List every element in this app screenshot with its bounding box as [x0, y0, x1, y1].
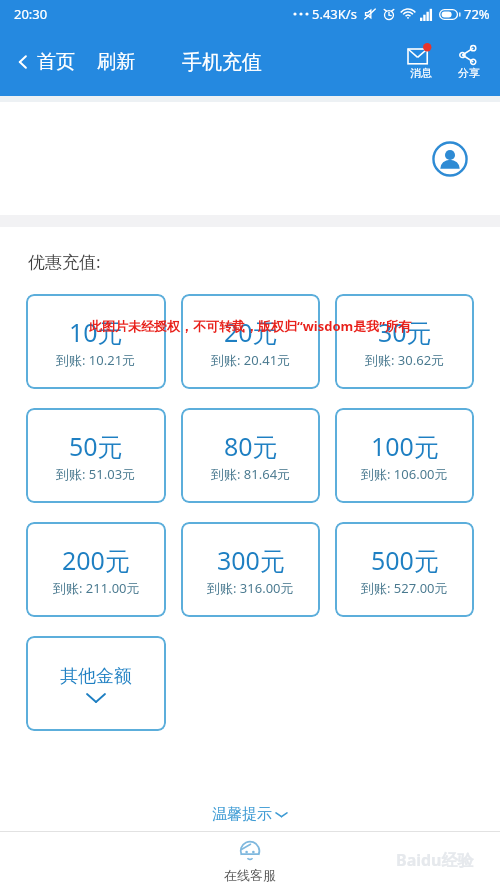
button[interactable]: 20元: [181, 294, 320, 389]
button[interactable]: 100元: [335, 408, 474, 503]
button[interactable]: 首页: [10, 44, 80, 80]
staticText: 80元: [224, 429, 278, 463]
staticText: 手机充值: [182, 50, 262, 75]
button[interactable]: 50元: [26, 408, 166, 503]
staticText: 到账: 30.62元: [365, 351, 445, 369]
button[interactable]: 消息: [400, 43, 442, 82]
staticText: 300元: [217, 543, 285, 577]
staticText: 在线客服: [224, 867, 276, 883]
staticText: 200元: [62, 543, 130, 577]
staticText: 20:30: [14, 5, 48, 23]
staticText: 到账: 10.21元: [56, 351, 136, 369]
staticText: 其他金额: [60, 665, 132, 688]
staticText: 5.43K/s: [312, 5, 357, 23]
staticText: Baidu经验: [396, 849, 474, 871]
staticText: 72%: [464, 5, 490, 23]
button[interactable]: 温馨提示: [0, 805, 500, 824]
button[interactable]: 300元: [181, 522, 320, 617]
button[interactable]: 刷新: [92, 44, 140, 80]
button[interactable]: 500元: [335, 522, 474, 617]
staticText: 分享: [458, 66, 480, 80]
button[interactable]: 80元: [181, 408, 320, 503]
button[interactable]: 10元: [26, 294, 166, 389]
staticText: 到账: 316.00元: [207, 579, 294, 597]
staticText: 到账: 20.41元: [211, 351, 291, 369]
staticText: 到账: 527.00元: [361, 579, 448, 597]
button[interactable]: Account: [432, 141, 468, 177]
staticText: 10元: [69, 315, 123, 349]
staticText: 优惠充值:: [28, 250, 101, 273]
button[interactable]: 200元: [26, 522, 166, 617]
staticText: 500元: [371, 543, 439, 577]
staticText: 消息: [410, 66, 432, 80]
staticText: 50元: [69, 429, 123, 463]
staticText: 到账: 211.00元: [53, 579, 140, 597]
staticText: 此图片未经授权，不可转载，版权归“wisdom是我”所有: [6, 317, 494, 335]
button[interactable]: 在线客服: [220, 834, 280, 887]
staticText: 到账: 51.03元: [56, 465, 136, 483]
button[interactable]: 30元: [335, 294, 474, 389]
staticText: 刷新: [97, 50, 135, 74]
staticText: 到账: 81.64元: [211, 465, 291, 483]
staticText: 30元: [378, 315, 432, 349]
staticText: 到账: 106.00元: [361, 465, 448, 483]
staticText: 100元: [371, 429, 439, 463]
button[interactable]: 分享: [450, 43, 488, 82]
staticText: 温馨提示: [212, 805, 272, 824]
staticText: 首页: [37, 50, 75, 74]
staticText: 20元: [224, 315, 278, 349]
button[interactable]: 其他金额: [26, 636, 166, 731]
